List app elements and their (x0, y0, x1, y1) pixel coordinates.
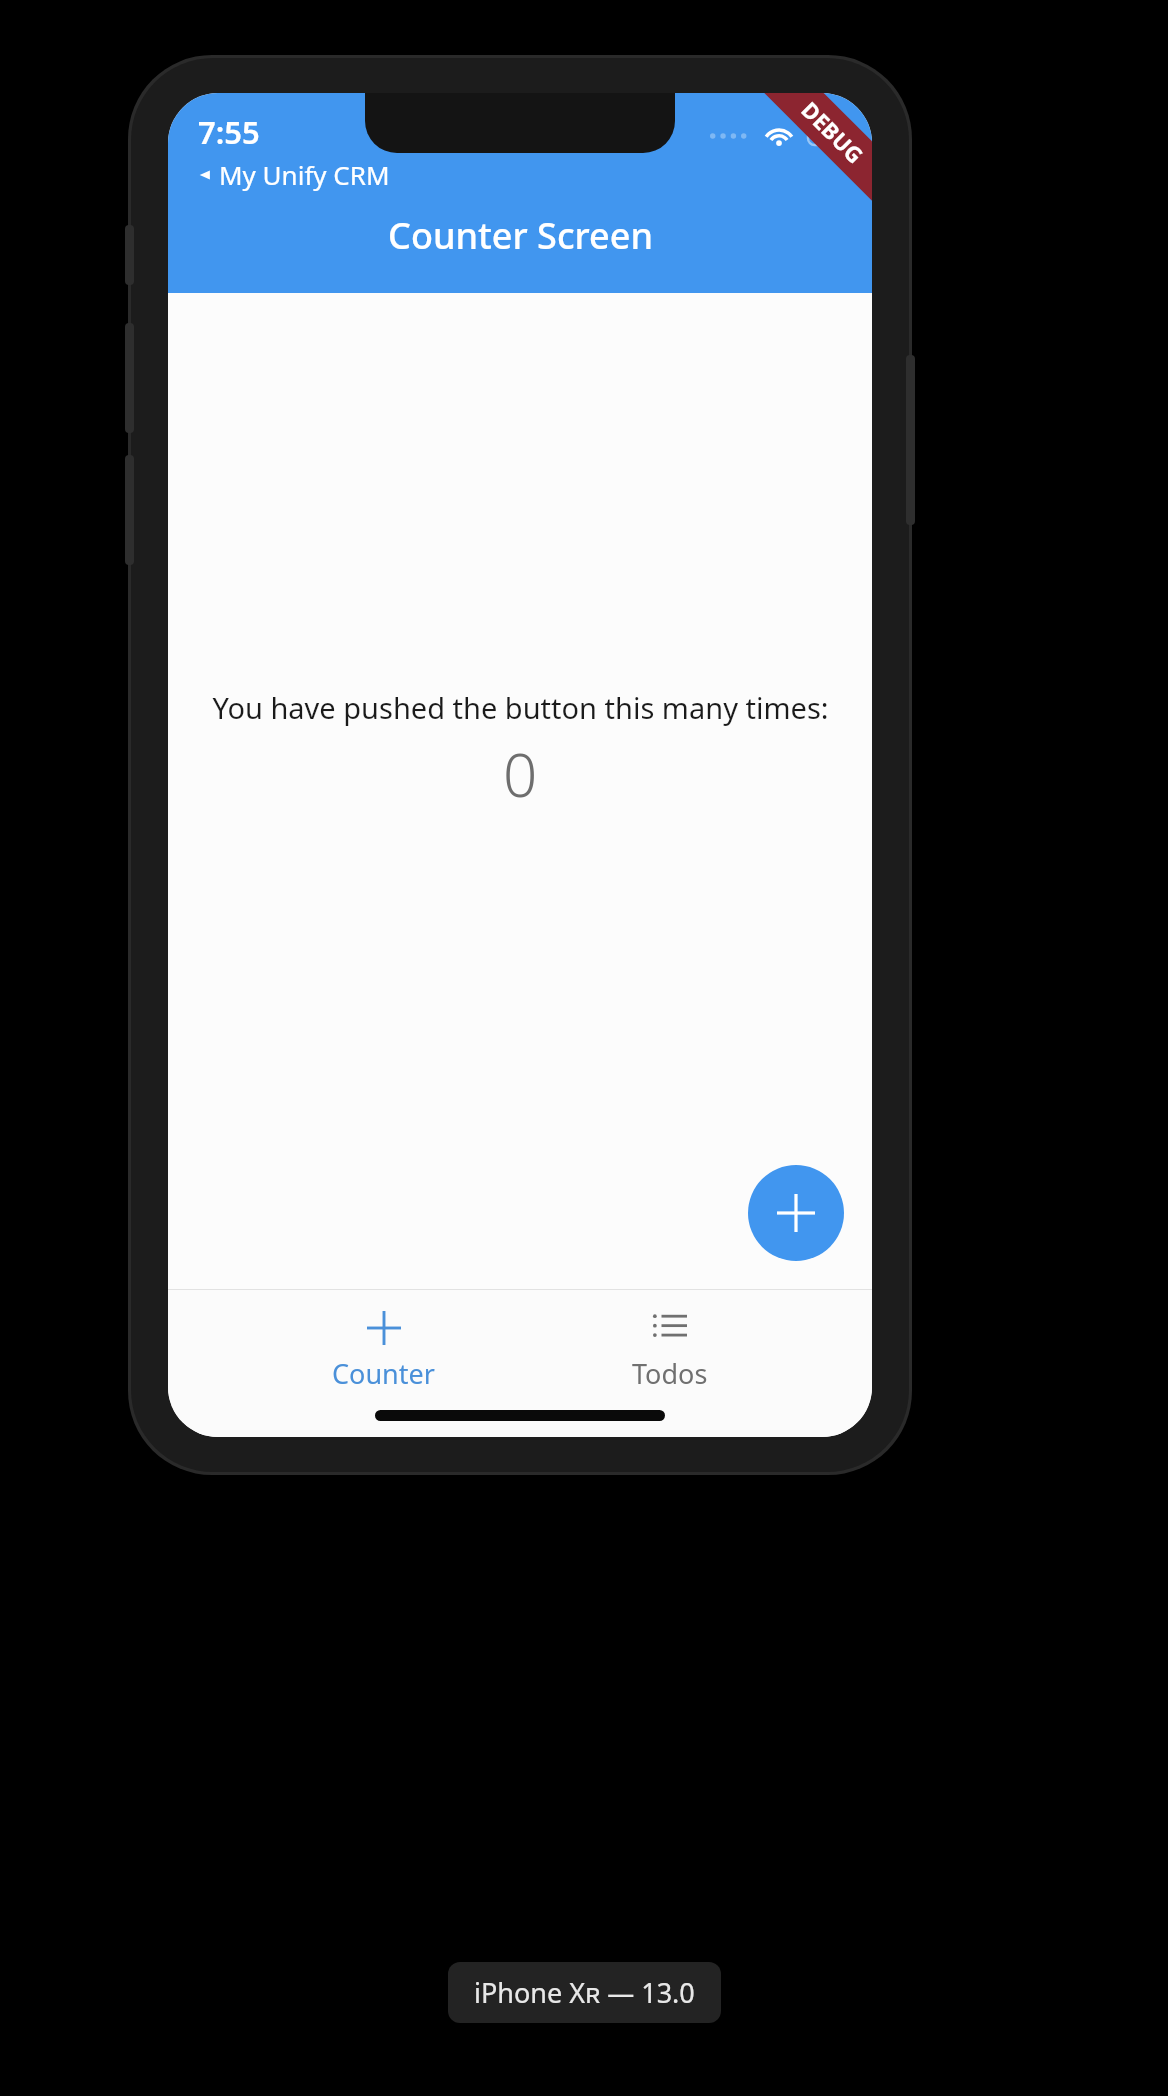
staticText: Counter Screen (388, 211, 653, 260)
staticText: Todos (632, 1355, 708, 1392)
button[interactable]: Counter (300, 1303, 467, 1400)
staticText: iPhone Xʀ — 13.0 (474, 1974, 695, 2011)
staticText: Counter (332, 1355, 435, 1392)
staticText: You have pushed the button this many tim… (212, 688, 829, 727)
staticText: DEBUG (795, 94, 870, 169)
staticText: My Unify CRM (219, 157, 390, 192)
button[interactable]: Increment (748, 1165, 844, 1261)
button[interactable]: Todos (600, 1303, 740, 1400)
staticText: 7:55 (198, 111, 260, 153)
staticText: 0 (503, 733, 538, 815)
